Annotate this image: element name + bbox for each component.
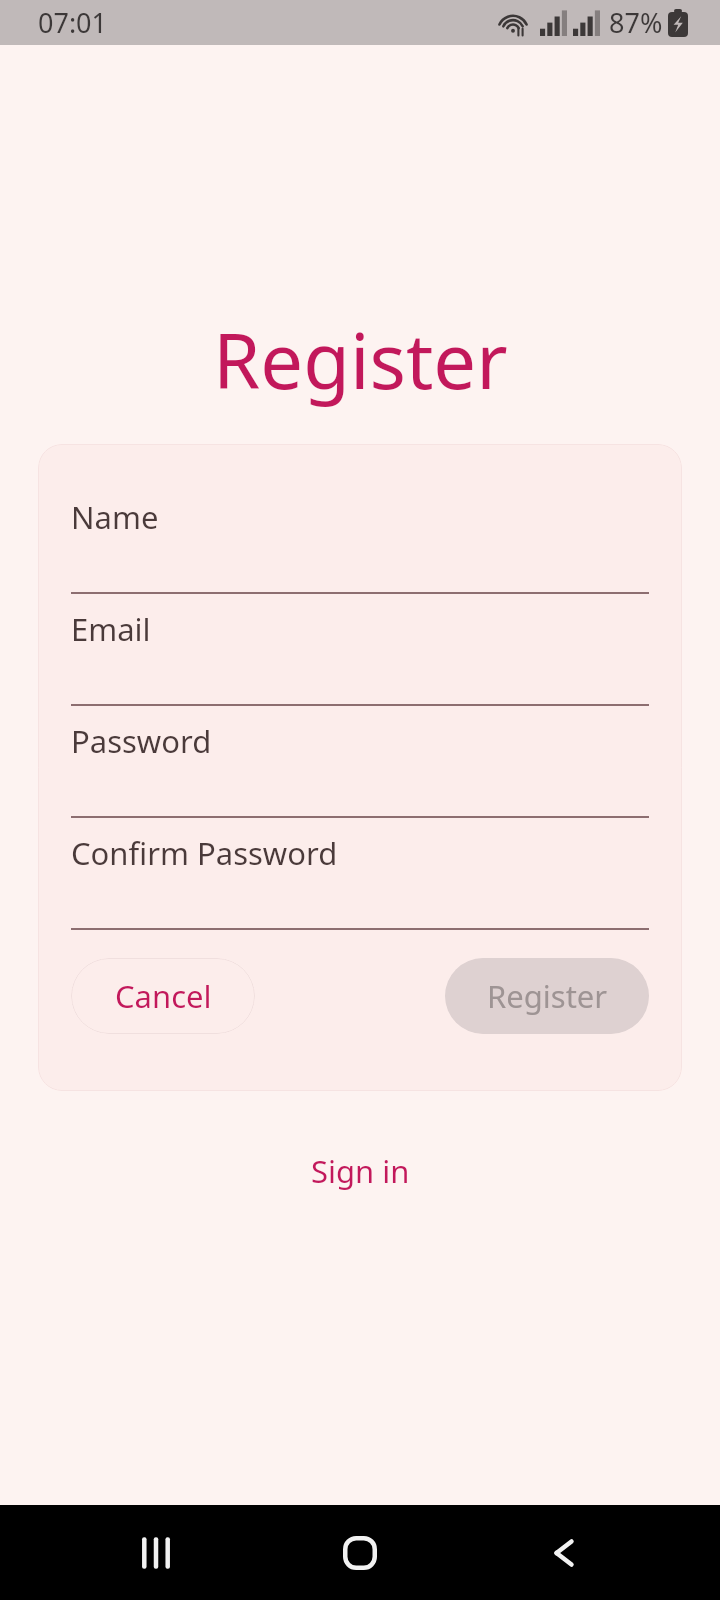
button[interactable]: Recent apps <box>108 1505 204 1600</box>
staticText: Password <box>71 720 212 762</box>
staticText: Confirm Password <box>71 832 338 874</box>
staticText: Cancel <box>115 975 212 1017</box>
button[interactable]: Password <box>38 706 682 818</box>
button[interactable]: Name <box>38 482 682 594</box>
staticText: Register <box>487 975 608 1017</box>
staticText: Register <box>213 308 508 412</box>
staticText: Sign in <box>311 1150 410 1192</box>
button[interactable]: Register <box>445 958 649 1034</box>
button[interactable]: Back <box>516 1505 612 1600</box>
staticText: Email <box>71 608 151 650</box>
staticText: 87% <box>609 4 663 41</box>
button[interactable]: Sign in <box>297 1144 424 1198</box>
staticText: Name <box>71 496 159 538</box>
staticText: 07:01 <box>38 4 108 41</box>
button[interactable]: Cancel <box>71 958 255 1034</box>
button[interactable]: Email <box>38 594 682 706</box>
button[interactable]: Confirm Password <box>38 818 682 930</box>
button[interactable]: Home <box>312 1505 408 1600</box>
